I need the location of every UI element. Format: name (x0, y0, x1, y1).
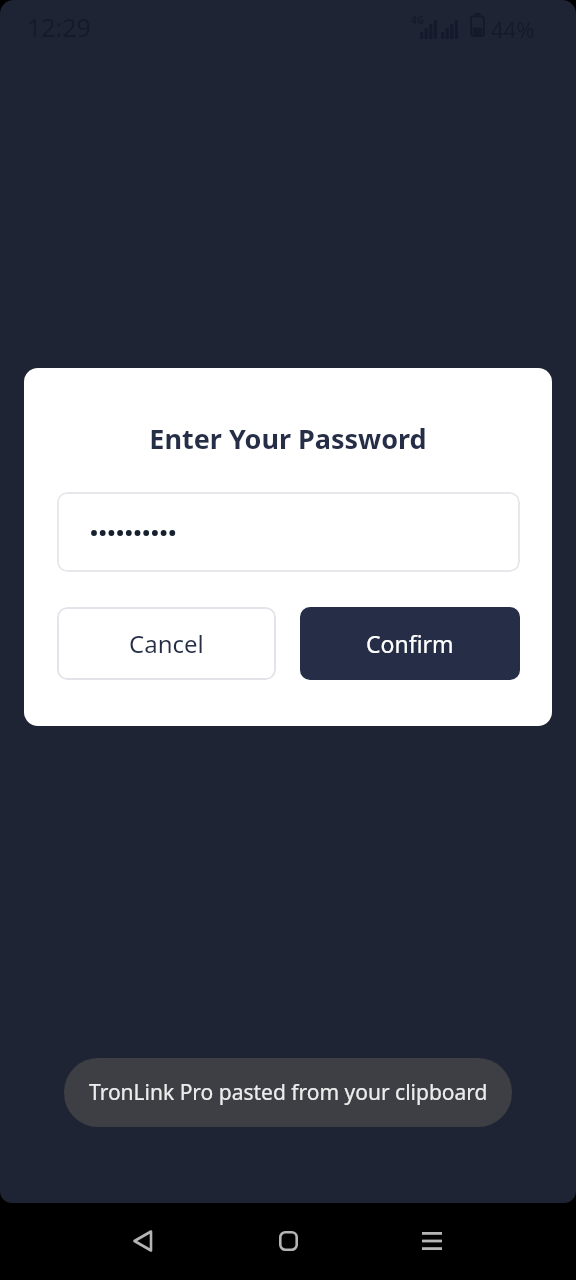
staticText: 4G (411, 13, 424, 27)
staticText: Confirm (366, 628, 454, 659)
button[interactable]: Cancel (57, 607, 276, 680)
button[interactable] (264, 1217, 312, 1265)
button[interactable]: Confirm (300, 607, 520, 680)
button[interactable] (57, 492, 520, 572)
staticText: 12:29 (27, 10, 91, 44)
button[interactable] (408, 1217, 456, 1265)
staticText: Cancel (129, 627, 204, 660)
staticText: 44% (491, 14, 535, 44)
staticText: TronLink Pro pasted from your clipboard (89, 1078, 488, 1107)
button[interactable] (119, 1217, 167, 1265)
staticText: Enter Your Password (24, 420, 552, 457)
